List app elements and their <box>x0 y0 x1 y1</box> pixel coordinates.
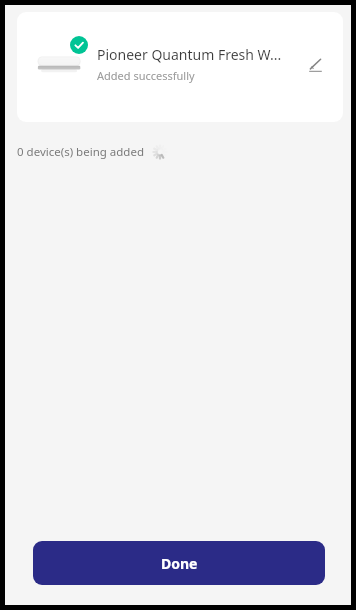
staticText: 0 device(s) being added <box>17 144 144 160</box>
button[interactable]: Done <box>33 541 325 585</box>
button[interactable]: Rename device <box>300 50 332 82</box>
button[interactable]: Pioneer Quantum Fresh W... <box>17 12 343 122</box>
staticText: Pioneer Quantum Fresh W... <box>97 45 282 64</box>
staticText: Done <box>161 554 198 573</box>
staticText: Added successfully <box>97 68 195 83</box>
